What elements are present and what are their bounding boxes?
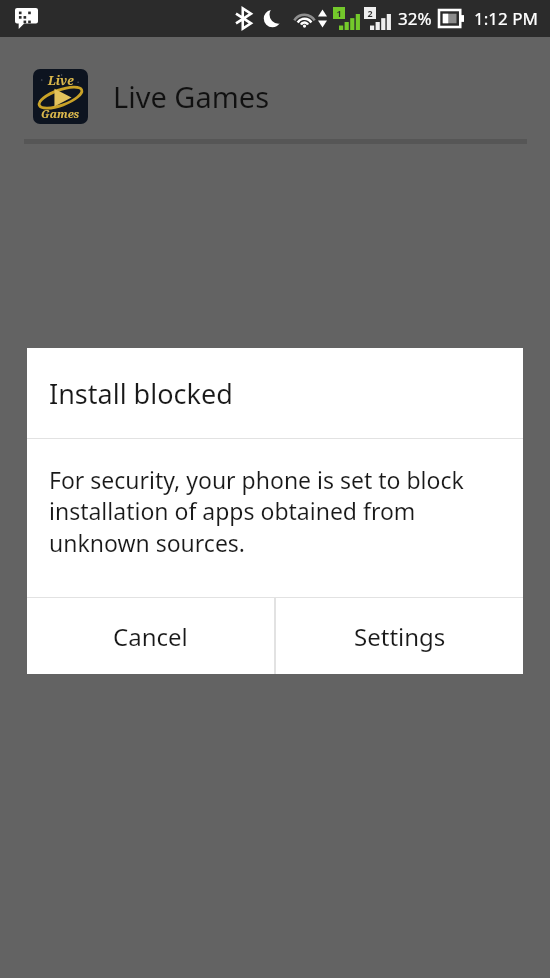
staticText: For security, your phone is set to block… bbox=[49, 464, 505, 559]
staticText: Install blocked bbox=[49, 375, 233, 412]
staticText: Live Games bbox=[113, 77, 270, 116]
staticText: 32% bbox=[398, 7, 432, 30]
staticText: Live bbox=[48, 72, 74, 88]
staticText: 1 bbox=[336, 7, 342, 19]
staticText: 2 bbox=[367, 7, 373, 19]
button[interactable]: Cancel bbox=[27, 598, 274, 674]
staticText: Settings bbox=[354, 620, 446, 653]
staticText: 1:12 PM bbox=[474, 7, 538, 30]
other: Messages notification bbox=[15, 8, 38, 29]
staticText: Cancel bbox=[113, 620, 188, 653]
staticText: Games bbox=[41, 106, 80, 121]
button[interactable]: Settings bbox=[276, 598, 523, 674]
